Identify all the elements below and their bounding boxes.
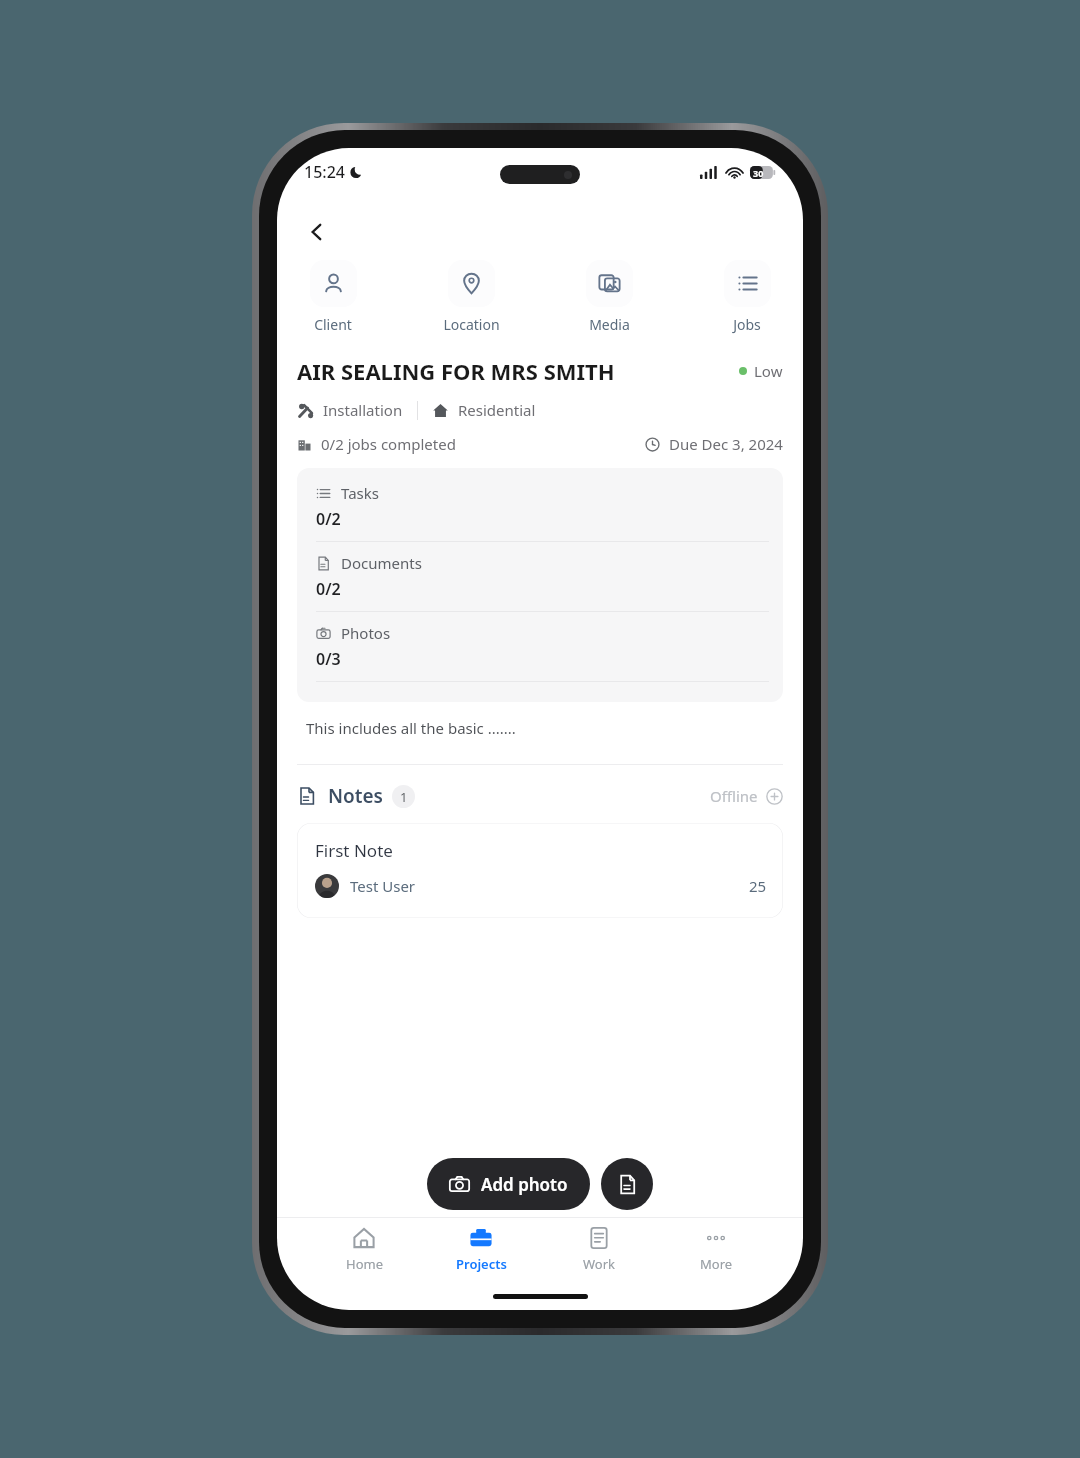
button[interactable]: Home — [321, 1222, 407, 1277]
staticText: This includes all the basic ....... — [306, 718, 516, 738]
staticText: First Note — [315, 839, 393, 862]
button[interactable]: Documents — [316, 553, 769, 600]
button[interactable]: Back — [295, 210, 339, 254]
button[interactable]: Add document — [601, 1158, 653, 1210]
button[interactable]: Add photo — [427, 1158, 590, 1210]
staticText: Jobs — [733, 315, 761, 334]
staticText: More — [700, 1255, 733, 1273]
staticText: 15:24 — [304, 161, 345, 183]
staticText: Add photo — [481, 1173, 568, 1196]
button[interactable]: Jobs — [711, 260, 783, 334]
staticText: Low — [754, 361, 783, 381]
staticText: 30 — [753, 167, 764, 179]
button[interactable]: Location — [435, 260, 507, 334]
staticText: 0/3 — [316, 648, 341, 670]
staticText: Offline — [710, 786, 758, 806]
staticText: 25 — [749, 876, 767, 896]
button[interactable]: Photos — [316, 623, 769, 670]
button[interactable]: Work — [556, 1222, 642, 1277]
button[interactable]: More — [673, 1222, 759, 1277]
staticText: Documents — [341, 553, 422, 573]
button[interactable]: Notes — [297, 783, 415, 809]
button[interactable]: Projects — [438, 1222, 524, 1277]
staticText: Home — [346, 1255, 383, 1273]
button[interactable]: First Note — [297, 823, 783, 918]
button[interactable]: Client — [297, 260, 369, 334]
staticText: 0/2 jobs completed — [321, 434, 456, 454]
staticText: Notes — [328, 783, 383, 809]
staticText: Photos — [341, 623, 391, 643]
staticText: Projects — [456, 1255, 507, 1273]
staticText: Client — [314, 315, 352, 334]
button[interactable]: Tasks — [316, 483, 769, 530]
button[interactable]: Media — [573, 260, 645, 334]
staticText: 0/2 — [316, 508, 341, 530]
staticText: Installation — [323, 400, 403, 420]
staticText: Location — [443, 315, 500, 334]
staticText: Tasks — [341, 483, 379, 503]
staticText: Test User — [350, 876, 416, 896]
staticText: Media — [589, 315, 630, 334]
staticText: Due Dec 3, 2024 — [669, 434, 783, 454]
staticText: AIR SEALING FOR MRS SMITH — [297, 356, 615, 386]
staticText: 1 — [400, 788, 408, 806]
button[interactable]: Offline — [710, 786, 783, 806]
staticText: Work — [583, 1255, 616, 1273]
staticText: Residential — [458, 400, 536, 420]
staticText: 0/2 — [316, 578, 341, 600]
